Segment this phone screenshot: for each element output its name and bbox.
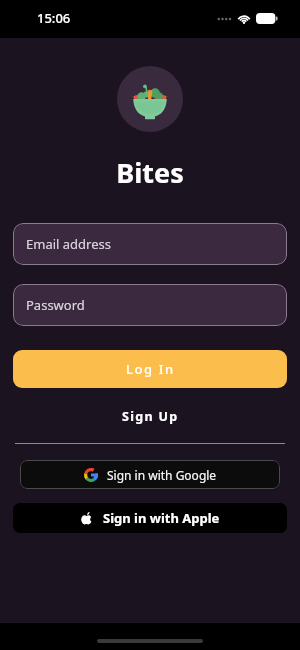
button[interactable]: Sign Up [112, 405, 189, 428]
other: Apple logo [80, 512, 93, 525]
button[interactable]: Email address [13, 223, 287, 265]
button[interactable]: Apple logo [13, 503, 287, 533]
staticText: Log In [126, 360, 175, 378]
staticText: Sign in with Google [107, 467, 217, 483]
staticText: Password [26, 296, 85, 314]
button[interactable]: Google logo [20, 460, 280, 489]
staticText: Email address [26, 235, 111, 253]
button[interactable]: Password [13, 284, 287, 326]
other: Google logo [84, 468, 98, 482]
staticText: Bites [0, 154, 300, 191]
staticText: Sign in with Apple [103, 509, 220, 527]
staticText: 15:06 [37, 9, 71, 27]
staticText: Sign Up [122, 408, 179, 425]
button[interactable]: Log In [13, 350, 287, 388]
